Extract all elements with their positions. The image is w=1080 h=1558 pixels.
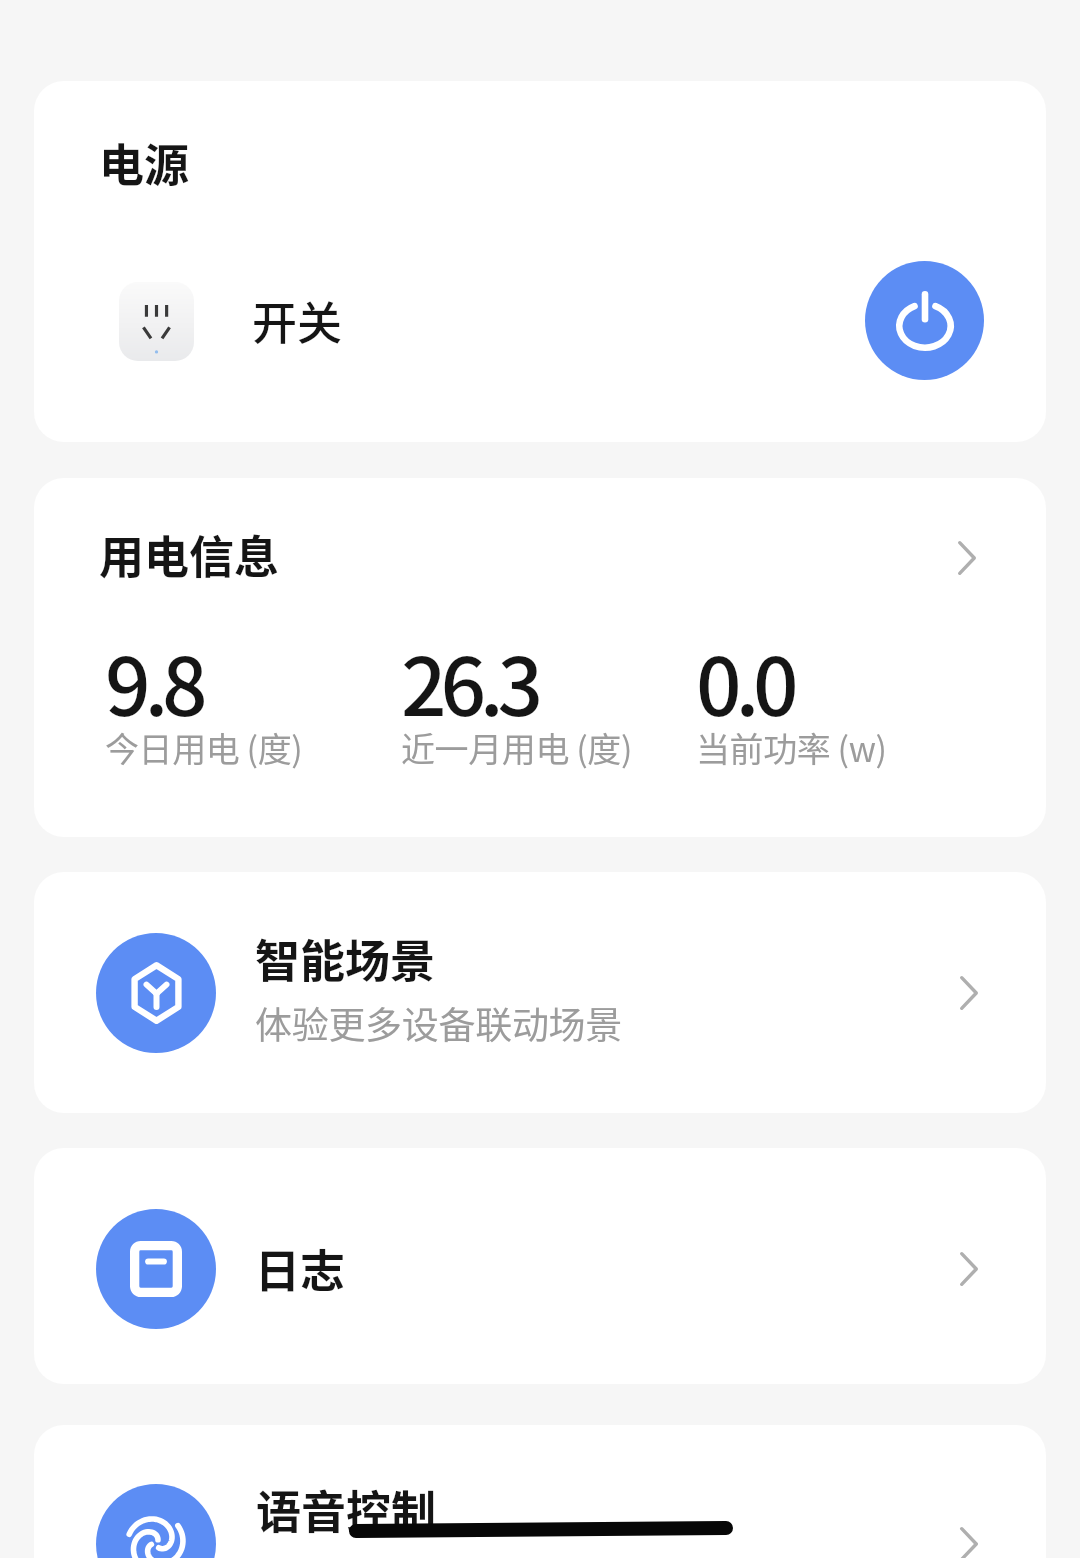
staticText: 体验更多设备联动场景 [255,996,622,1050]
button[interactable]: 开关 [34,202,1046,442]
staticText: 当前功率 (w) [696,723,887,772]
staticText: 智能场景 [255,926,436,991]
button[interactable]: Power toggle [865,261,984,380]
button[interactable]: 用电信息 [34,478,1046,638]
staticText: 语音控制 [256,1477,437,1542]
staticText: 电源 [99,130,190,195]
staticText: 近一月用电 (度) [401,723,632,772]
button[interactable]: Voice control [34,1425,1046,1558]
button[interactable]: 智能场景 [34,872,1046,1113]
button[interactable]: 日志 [34,1148,1046,1384]
staticText: 0.0 [696,623,793,739]
staticText: 9.8 [105,623,202,739]
staticText: 用电信息 [99,522,280,587]
staticText: 日志 [255,1236,346,1301]
staticText: 26.3 [401,623,537,739]
staticText: 今日用电 (度) [105,723,303,772]
staticText: 开关 [252,288,343,353]
